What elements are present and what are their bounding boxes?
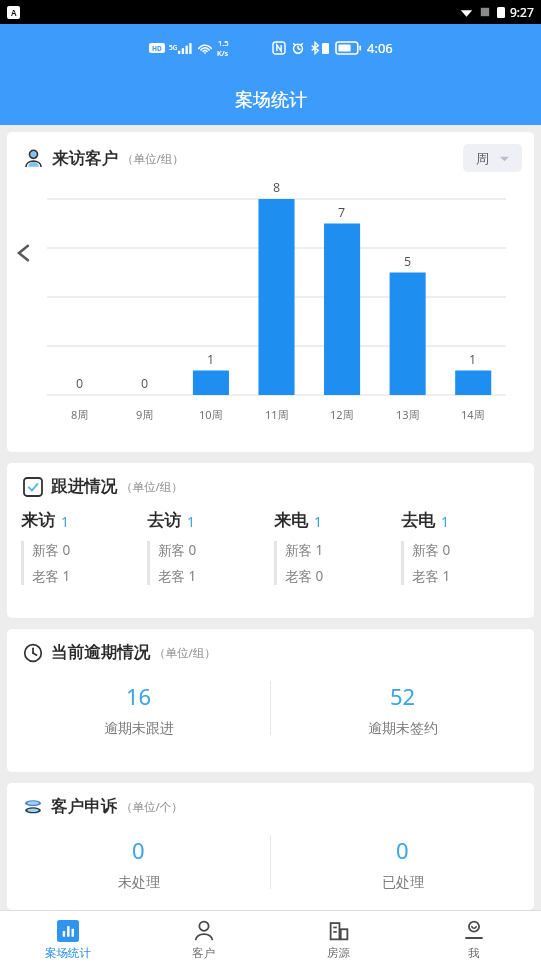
staticText: 房源 xyxy=(327,946,350,960)
staticText: 1 xyxy=(61,512,70,531)
button[interactable]: 跟进情况 xyxy=(7,463,534,618)
staticText: 0 xyxy=(132,835,145,865)
staticText: 16 xyxy=(126,681,152,711)
staticText: K/s xyxy=(217,48,229,58)
button[interactable]: 客户申诉 xyxy=(7,783,534,910)
button[interactable]: 去电 xyxy=(401,510,528,585)
staticText: 5G xyxy=(169,43,178,52)
staticText: 已处理 xyxy=(382,874,424,892)
staticText: 13周 xyxy=(396,407,420,422)
staticText: 来访客户 xyxy=(52,148,118,169)
staticText: HD xyxy=(152,44,162,53)
button[interactable]: 16 xyxy=(7,681,270,753)
staticText: （单位/组） xyxy=(121,479,183,495)
staticText: 逾期未签约 xyxy=(368,720,438,738)
staticText: 跟进情况 xyxy=(51,476,117,497)
button[interactable]: 0 xyxy=(7,835,270,907)
button[interactable]: 当前逾期情况 xyxy=(7,629,534,772)
staticText: 案场统计 xyxy=(235,89,307,112)
button[interactable]: 来访客户 xyxy=(7,132,534,452)
staticText: 来访 xyxy=(21,510,55,531)
staticText: 逾期未跟进 xyxy=(104,720,174,738)
staticText: 52 xyxy=(390,681,416,711)
button[interactable]: 周 xyxy=(463,144,522,172)
button[interactable]: 来访 xyxy=(21,510,147,585)
button[interactable]: 客户 xyxy=(136,911,271,968)
button[interactable]: 52 xyxy=(271,681,534,753)
staticText: 14周 xyxy=(461,407,485,422)
staticText: 新客 0 xyxy=(158,541,197,559)
staticText: 老客 1 xyxy=(32,567,71,585)
staticText: 5 xyxy=(404,253,412,270)
staticText: 客户 xyxy=(192,946,215,960)
staticText: 11周 xyxy=(265,407,289,422)
staticText: 9周 xyxy=(136,407,154,422)
staticText: 10周 xyxy=(199,407,223,422)
button[interactable]: 0 xyxy=(271,835,534,907)
staticText: 当前逾期情况 xyxy=(51,642,150,663)
staticText: 新客 0 xyxy=(412,541,451,559)
button[interactable]: 我 xyxy=(406,911,541,968)
staticText: 0 xyxy=(141,375,149,392)
button[interactable]: 来电 xyxy=(274,510,401,585)
button[interactable]: 房源 xyxy=(271,911,406,968)
staticText: （单位/组） xyxy=(154,645,216,661)
staticText: 0 xyxy=(76,375,84,392)
staticText: 案场统计 xyxy=(45,946,91,960)
staticText: （单位/个） xyxy=(121,799,183,815)
staticText: 来电 xyxy=(274,510,308,531)
staticText: 12周 xyxy=(330,407,354,422)
button[interactable]: 案场统计 xyxy=(0,911,136,968)
staticText: 1.5 xyxy=(218,38,229,48)
staticText: 我 xyxy=(468,946,480,960)
staticText: 8 xyxy=(273,179,281,196)
staticText: （单位/组） xyxy=(122,151,184,167)
staticText: 4:06 xyxy=(367,39,393,57)
staticText: 去访 xyxy=(147,510,181,531)
staticText: 1 xyxy=(441,512,450,531)
staticText: 新客 1 xyxy=(285,541,324,559)
staticText: 未处理 xyxy=(118,874,160,892)
staticText: 周 xyxy=(476,150,489,166)
staticText: 7 xyxy=(338,204,346,221)
button[interactable]: 去访 xyxy=(147,510,274,585)
staticText: 客户申诉 xyxy=(51,796,117,817)
staticText: 1 xyxy=(207,351,215,368)
staticText: 9:27 xyxy=(510,4,534,20)
staticText: 去电 xyxy=(401,510,435,531)
staticText: 0 xyxy=(396,835,409,865)
staticText: 8周 xyxy=(71,407,89,422)
staticText: 新客 0 xyxy=(32,541,71,559)
staticText: 1 xyxy=(187,512,196,531)
staticText: 老客 1 xyxy=(412,567,451,585)
other: Previous week xyxy=(15,244,33,262)
staticText: 1 xyxy=(469,351,477,368)
staticText: 1 xyxy=(314,512,323,531)
staticText: A xyxy=(11,7,17,18)
staticText: 老客 0 xyxy=(285,567,324,585)
staticText: 老客 1 xyxy=(158,567,197,585)
